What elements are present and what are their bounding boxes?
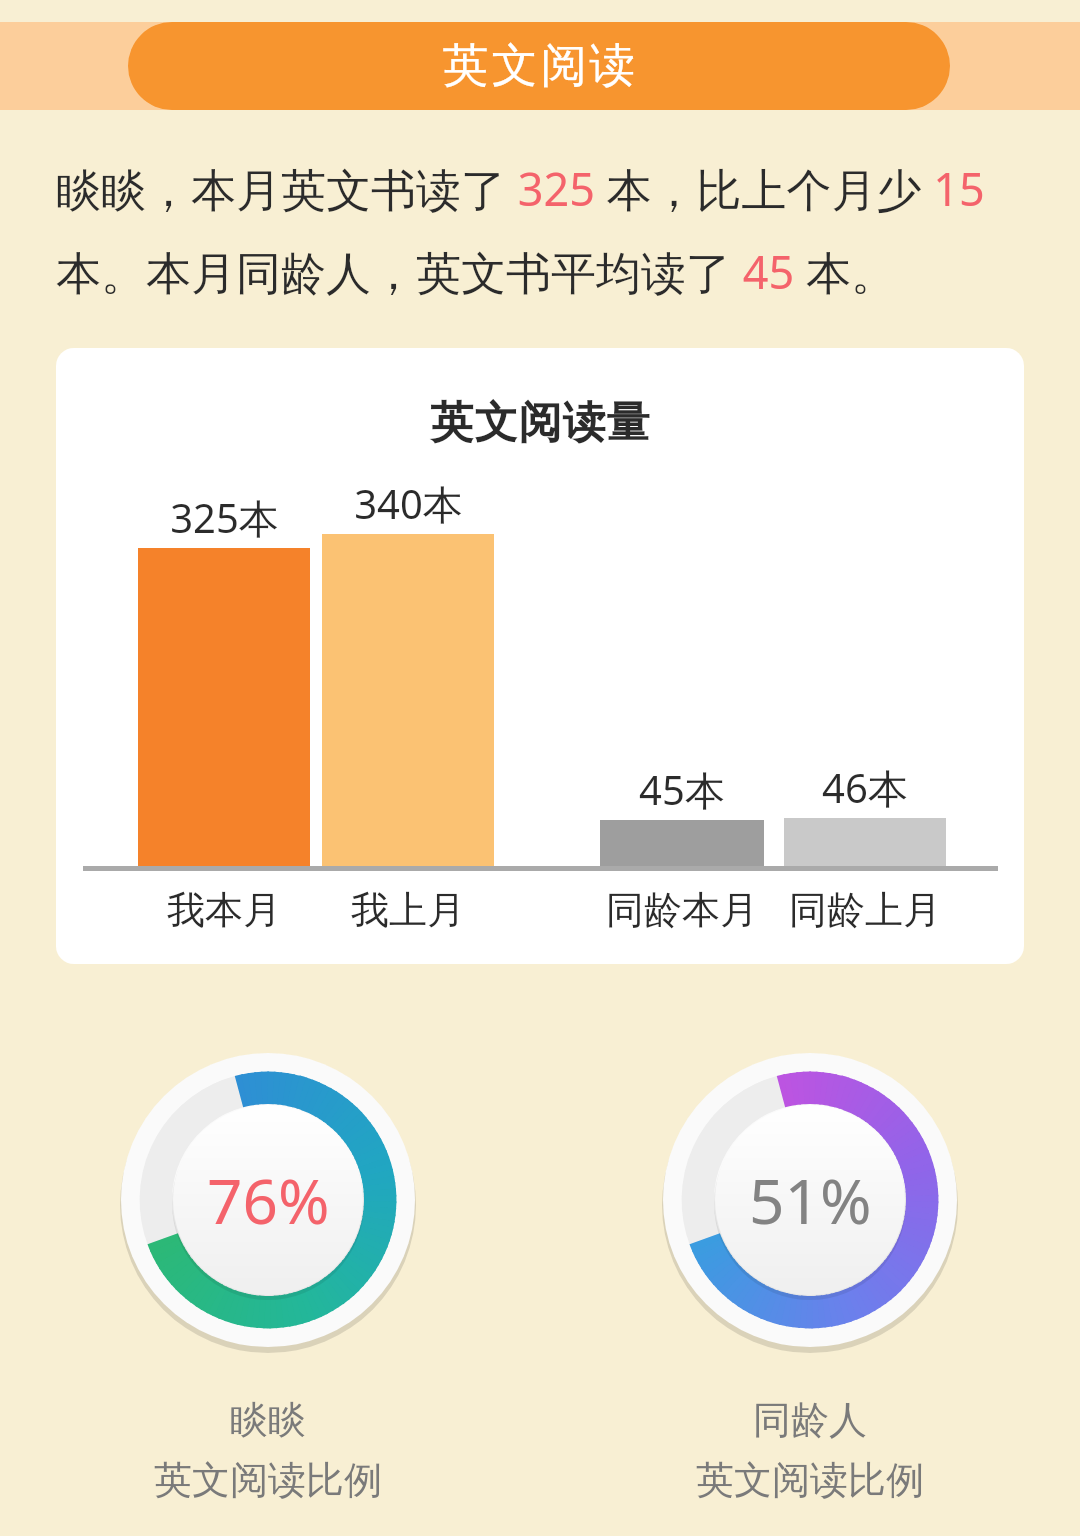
- staticText: 76%: [207, 1158, 330, 1242]
- staticText: 325本: [170, 490, 279, 545]
- staticText: 英文阅读量: [430, 396, 650, 450]
- button[interactable]: Peer English reading ratio 51 percent: [660, 1050, 960, 1350]
- staticText: 同龄人: [753, 1396, 867, 1444]
- staticText: 340本: [354, 476, 463, 531]
- staticText: 英文阅读比例: [154, 1456, 382, 1504]
- staticText: 46本: [822, 760, 908, 815]
- staticText: 我本月: [167, 886, 281, 934]
- staticText: 睒睒，本月英文书读了 325 本，比上个月少 15 本。本月同龄人，英文书平均读…: [56, 158, 1024, 302]
- staticText: 同龄本月: [606, 886, 758, 934]
- staticText: 51%: [749, 1158, 872, 1242]
- button[interactable]: My English reading ratio 76 percent: [118, 1050, 418, 1350]
- staticText: 英文阅读比例: [696, 1456, 924, 1504]
- staticText: 英文阅读: [441, 37, 637, 95]
- staticText: 45本: [639, 762, 725, 817]
- button[interactable]: 英文阅读: [128, 22, 950, 110]
- staticText: 睒睒: [230, 1396, 306, 1444]
- staticText: 同龄上月: [789, 886, 941, 934]
- button[interactable]: 英文阅读量: [56, 348, 1024, 964]
- staticText: 我上月: [351, 886, 465, 934]
